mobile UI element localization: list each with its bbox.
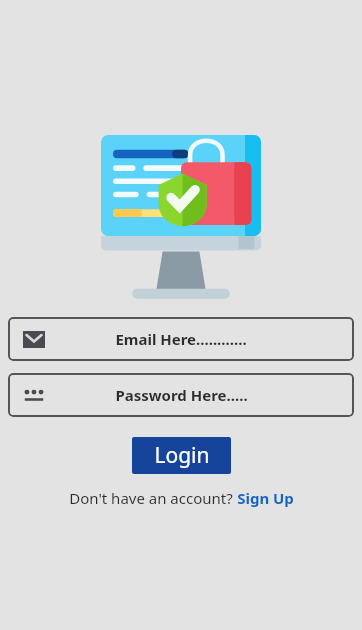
staticText: Sign Up	[237, 488, 294, 508]
button[interactable]: Email	[8, 317, 354, 361]
button[interactable]: Login	[132, 437, 231, 474]
staticText: Password Here.....	[115, 385, 248, 405]
button[interactable]: Sign Up	[235, 488, 296, 508]
staticText: Email Here............	[115, 329, 247, 349]
staticText: Don't have an account?	[67, 488, 235, 508]
staticText: Login	[154, 441, 210, 470]
button[interactable]: Password	[8, 373, 354, 417]
